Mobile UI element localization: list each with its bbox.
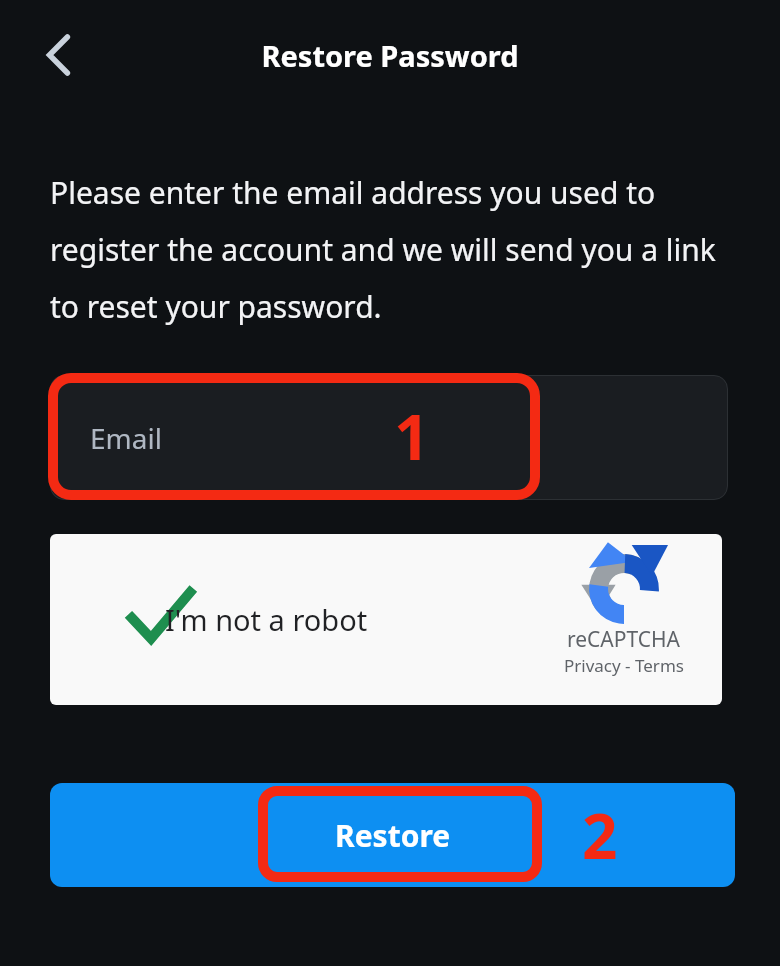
staticText: Restore: [335, 815, 451, 856]
staticText: reCAPTCHA: [567, 625, 681, 654]
button[interactable]: Restore: [50, 783, 735, 887]
staticText: Email: [90, 419, 162, 457]
staticText: 1: [394, 394, 430, 478]
button[interactable]: Email: [50, 375, 728, 500]
staticText: Restore Password: [0, 36, 780, 75]
staticText: Please enter the email address you used …: [50, 172, 734, 327]
button[interactable]: Back: [29, 25, 89, 85]
staticText: 2: [582, 793, 618, 877]
staticText: I'm not a robot: [165, 600, 368, 639]
staticText: Privacy - Terms: [564, 654, 684, 677]
button[interactable]: I'm not a robot checkbox, checked: [128, 586, 192, 650]
